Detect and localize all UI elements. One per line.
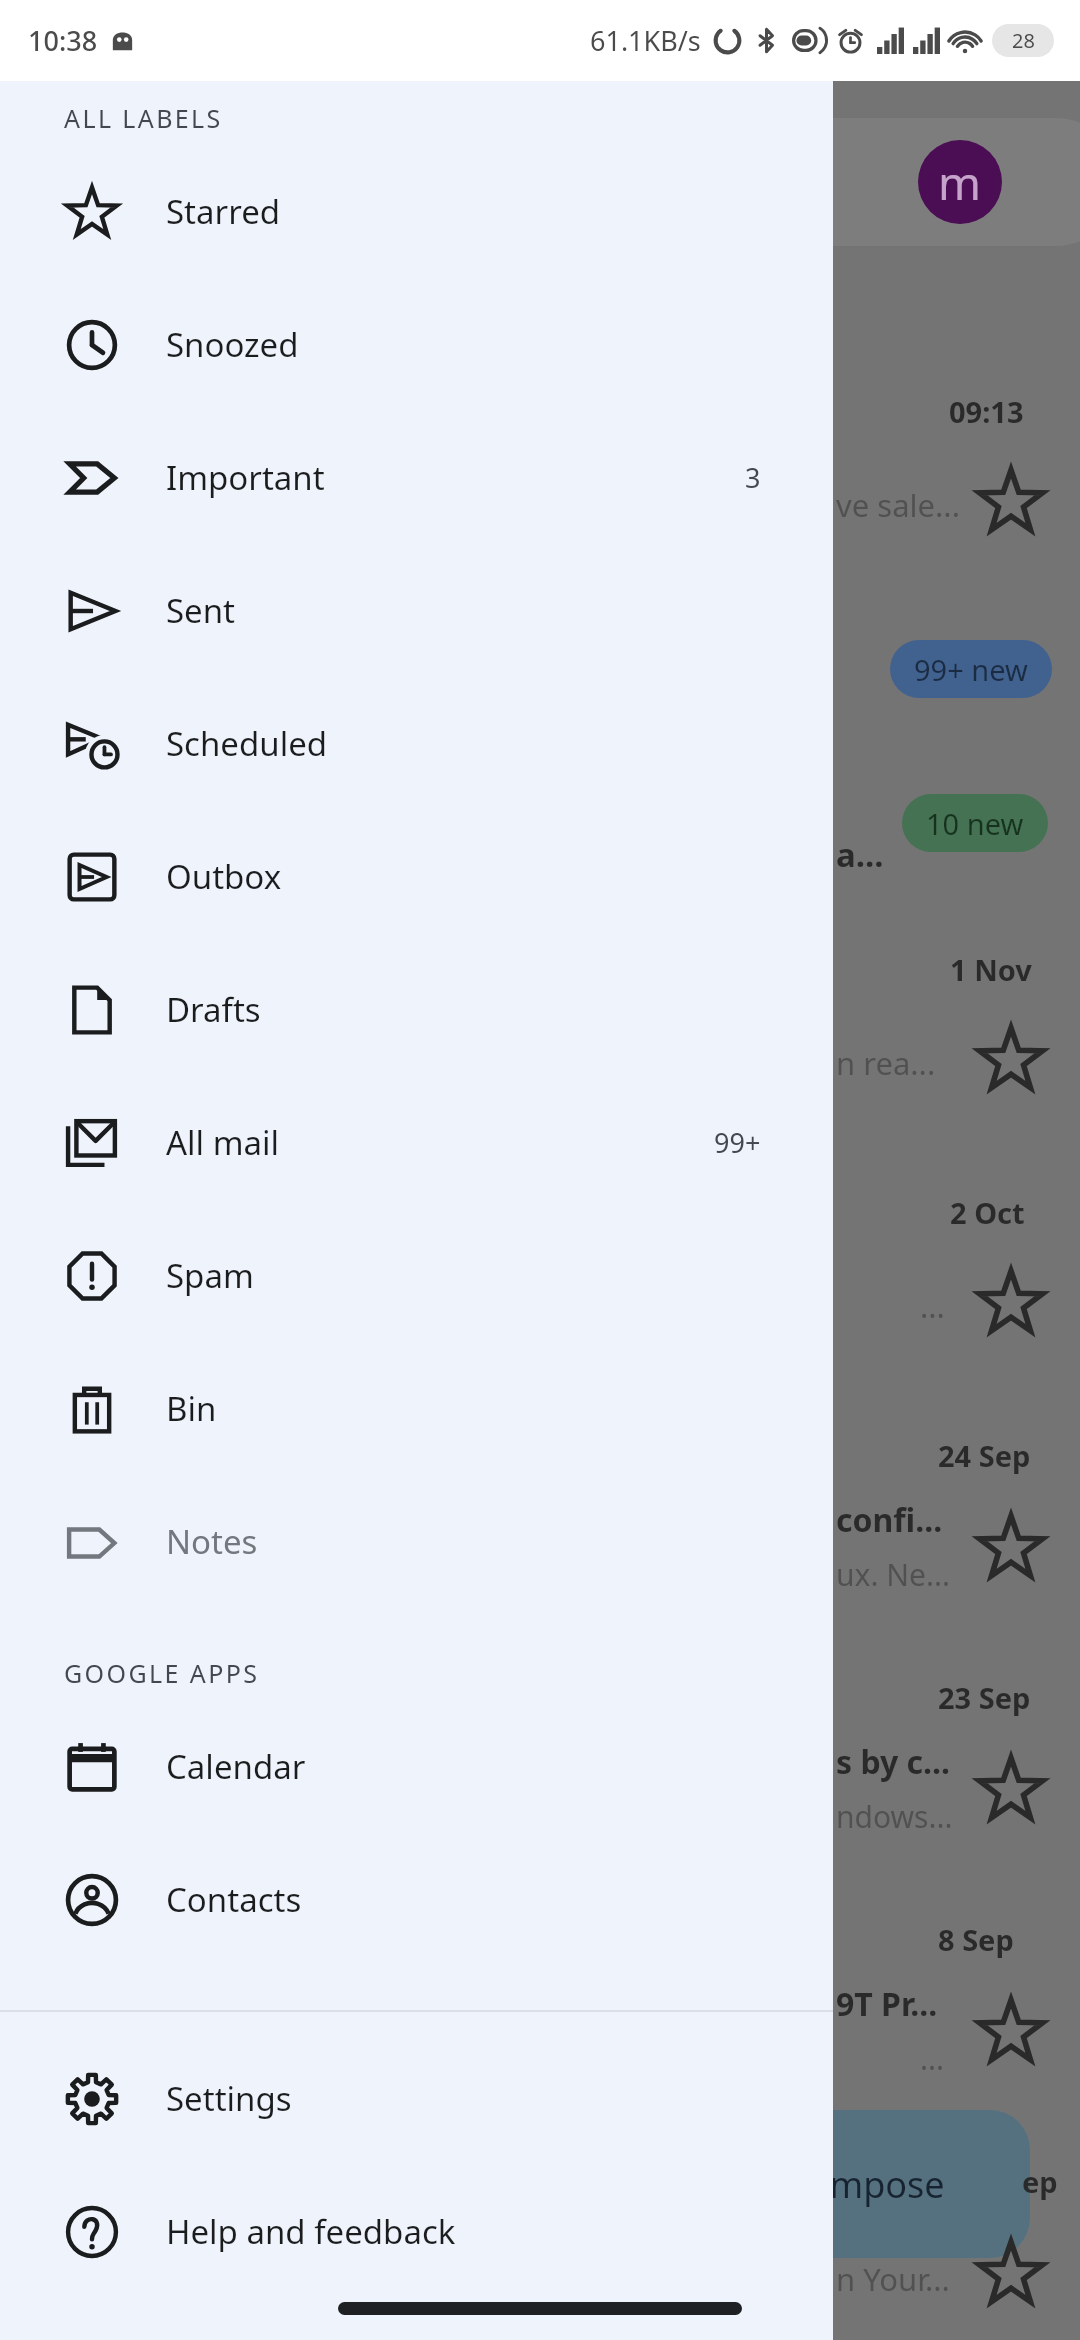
staticText: 24 Sep — [938, 1436, 1031, 1475]
staticText: 99+ new — [914, 650, 1028, 689]
staticText: ... — [920, 2038, 945, 2079]
staticText: Sent — [166, 588, 793, 633]
staticText: Settings — [166, 2076, 793, 2121]
staticText: ... — [920, 1285, 945, 1327]
button[interactable]: Sent — [0, 544, 833, 677]
button[interactable]: Bin — [0, 1342, 833, 1475]
staticText: n rea... — [836, 1042, 936, 1084]
staticText: 9T Pr... — [836, 1982, 938, 2026]
staticText: Drafts — [166, 987, 793, 1032]
button[interactable]: Important — [0, 411, 833, 544]
staticText: Snoozed — [166, 322, 793, 367]
staticText: 2 Oct — [950, 1193, 1025, 1232]
staticText: Help and feedback — [166, 2209, 793, 2254]
staticText: 09:13 — [949, 392, 1024, 431]
staticText: ALL LABELS — [64, 101, 223, 135]
staticText: GOOGLE APPS — [64, 1656, 260, 1690]
button[interactable]: Settings — [0, 2032, 833, 2165]
button[interactable]: Drafts — [0, 943, 833, 1076]
staticText: Contacts — [166, 1877, 793, 1922]
staticText: ux. Ne... — [836, 1554, 951, 1595]
staticText: All mail — [166, 1120, 714, 1165]
button[interactable]: Outbox — [0, 810, 833, 943]
staticText: 3 — [745, 459, 761, 496]
button[interactable]: Compose — [700, 2110, 1030, 2258]
staticText: 28 — [1012, 27, 1035, 54]
button[interactable]: Starred — [0, 145, 833, 278]
staticText: 23 Sep — [938, 1678, 1031, 1717]
staticText: s by c... — [836, 1740, 951, 1784]
staticText: n Your... — [836, 2258, 950, 2300]
staticText: 10 new — [926, 804, 1024, 843]
button[interactable]: Contacts — [0, 1833, 833, 1966]
staticText: ndows... — [836, 1796, 953, 1837]
staticText: Outbox — [166, 854, 793, 899]
staticText: Bin — [166, 1386, 793, 1431]
button[interactable]: Calendar — [0, 1700, 833, 1833]
button[interactable]: Notes — [0, 1475, 833, 1608]
button[interactable]: All mail — [0, 1076, 833, 1209]
staticText: m — [938, 151, 982, 214]
button[interactable]: Snoozed — [0, 278, 833, 411]
staticText: Starred — [166, 189, 793, 234]
staticText: Spam — [166, 1253, 793, 1298]
button[interactable]: Scheduled — [0, 677, 833, 810]
staticText: Scheduled — [166, 721, 793, 766]
staticText: confi... — [836, 1498, 943, 1542]
staticText: 8 Sep — [938, 1920, 1014, 1959]
staticText: ve sale... — [836, 484, 960, 526]
staticText: Calendar — [166, 1744, 793, 1789]
staticText: ep — [1022, 2162, 1058, 2201]
staticText: 10:38 — [28, 22, 98, 59]
staticText: 99+ — [714, 1124, 761, 1161]
staticText: 1 Nov — [950, 950, 1032, 989]
button[interactable]: Spam — [0, 1209, 833, 1342]
staticText: a... — [836, 832, 884, 877]
staticText: Compose — [785, 2160, 945, 2209]
staticText: Notes — [166, 1519, 793, 1564]
staticText: Important — [166, 455, 745, 500]
staticText: 61.1KB/s — [590, 22, 701, 59]
button[interactable]: Help and feedback — [0, 2165, 833, 2298]
